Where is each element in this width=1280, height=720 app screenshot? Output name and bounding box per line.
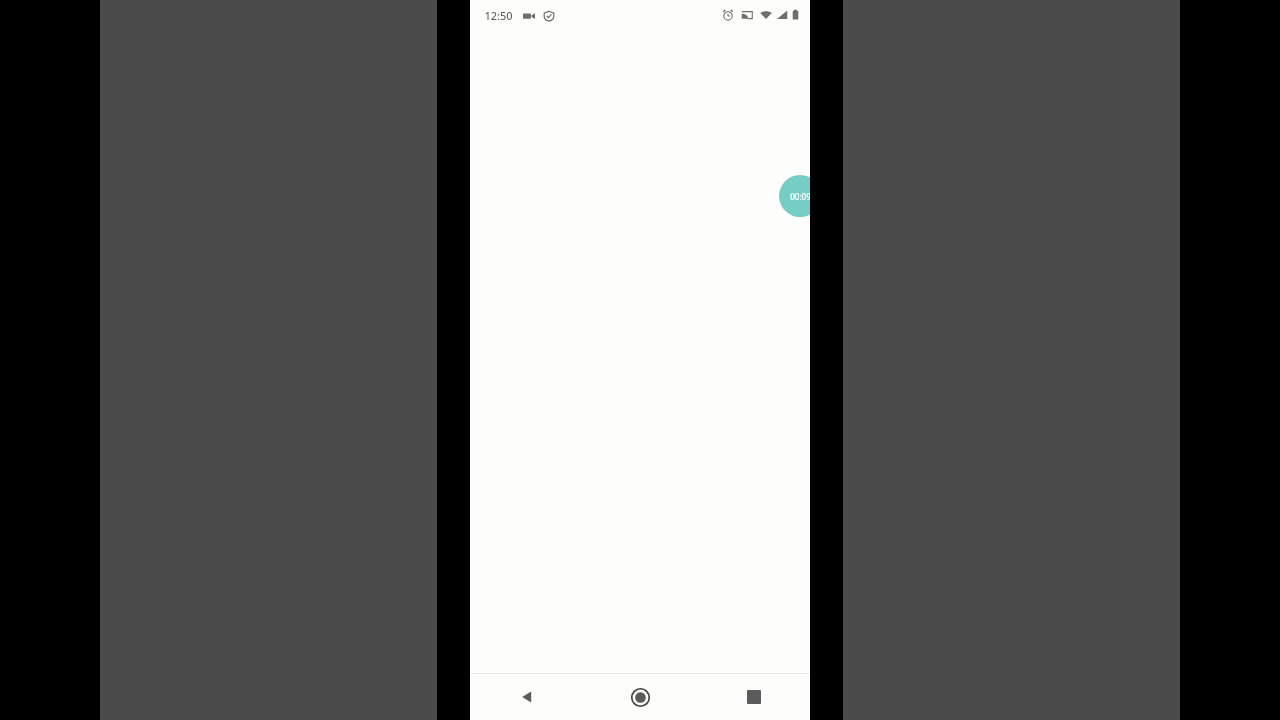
staticText: 00:09: [790, 191, 810, 202]
button[interactable]: Recent apps: [697, 674, 810, 720]
button[interactable]: Back: [470, 674, 584, 720]
staticText: 12:50: [484, 8, 513, 23]
button[interactable]: Home: [584, 674, 697, 720]
button[interactable]: Screen recording timer 00:09: [779, 175, 810, 217]
